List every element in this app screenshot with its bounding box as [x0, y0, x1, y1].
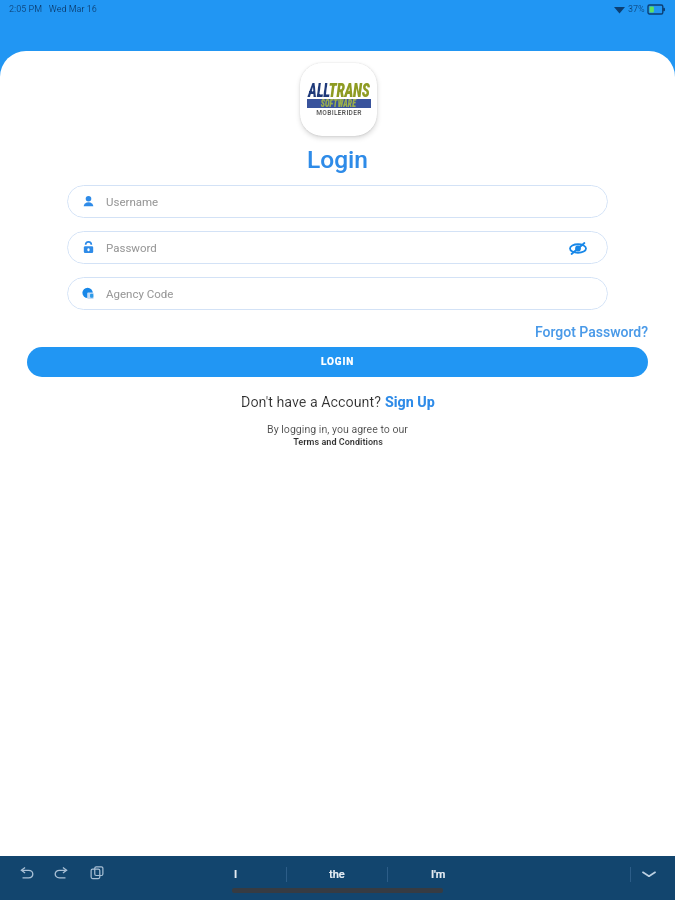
staticText: LOGIN	[321, 356, 355, 368]
staticText: Login	[307, 145, 368, 174]
staticText: Password	[106, 241, 157, 254]
button[interactable]: I'm	[388, 856, 488, 892]
button[interactable]: Undo	[12, 858, 42, 888]
button[interactable]: Agency Code	[67, 277, 608, 310]
staticText: I'm	[431, 868, 446, 881]
button[interactable]: I	[186, 856, 286, 892]
button[interactable]: the	[287, 856, 387, 892]
staticText: MOBILERIDER	[316, 109, 362, 117]
staticText: 37%	[628, 4, 645, 15]
button[interactable]: Redo	[46, 858, 76, 888]
button[interactable]: Forgot Password?	[535, 324, 649, 340]
button[interactable]: Terms and Conditions	[293, 437, 383, 448]
button[interactable]: Clipboard	[82, 858, 112, 888]
button[interactable]: Show password	[569, 239, 587, 257]
staticText: Username	[106, 195, 159, 208]
button[interactable]: Password	[67, 231, 608, 264]
staticText: Don't have a Account?	[241, 394, 385, 411]
staticText: ALLTRANS	[308, 78, 370, 103]
staticText: I	[234, 868, 238, 881]
button[interactable]: Hide suggestions	[631, 856, 667, 892]
staticText: Terms and Conditions	[293, 437, 383, 448]
button[interactable]: LOGIN	[27, 347, 648, 377]
button[interactable]: Username	[67, 185, 608, 218]
staticText: 2:05 PM Wed Mar 16	[9, 4, 97, 15]
staticText: the	[329, 868, 345, 881]
button[interactable]: Sign Up	[385, 394, 435, 411]
staticText: SOFTWARE	[321, 97, 356, 110]
staticText: By logging in, you agree to our	[267, 423, 408, 435]
staticText: Agency Code	[106, 287, 174, 300]
staticText: Sign Up	[385, 394, 435, 411]
staticText: Forgot Password?	[535, 324, 649, 340]
